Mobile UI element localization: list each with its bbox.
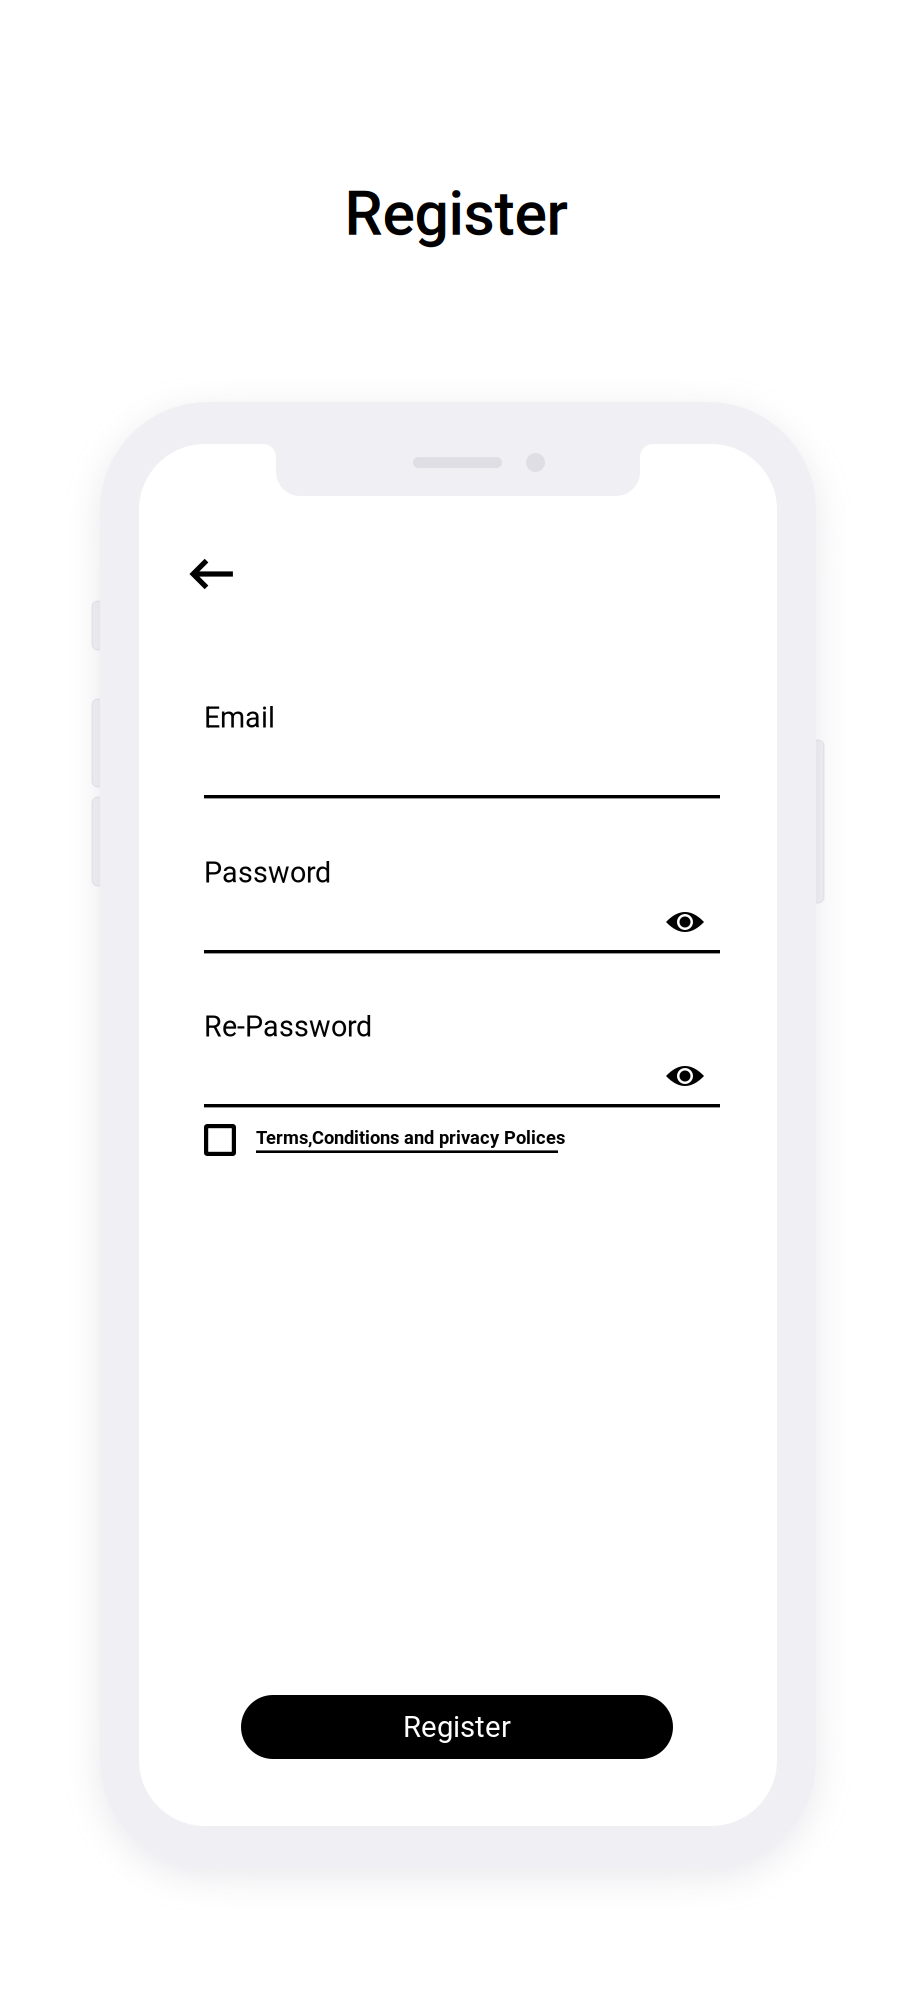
staticText: Password [204, 856, 331, 890]
button[interactable]: Terms,Conditions and privacy Polices [204, 1122, 720, 1158]
staticText: Register [403, 1710, 511, 1744]
button[interactable]: Show re-password [650, 1049, 720, 1103]
staticText: Email [204, 701, 275, 735]
staticText: Re-Password [204, 1010, 372, 1044]
button[interactable]: Register [241, 1695, 673, 1759]
button[interactable]: Back [151, 529, 275, 619]
staticText: Register [344, 178, 567, 250]
button[interactable]: Show password [650, 895, 720, 949]
staticText: Terms,Conditions and privacy Polices [256, 1127, 565, 1148]
